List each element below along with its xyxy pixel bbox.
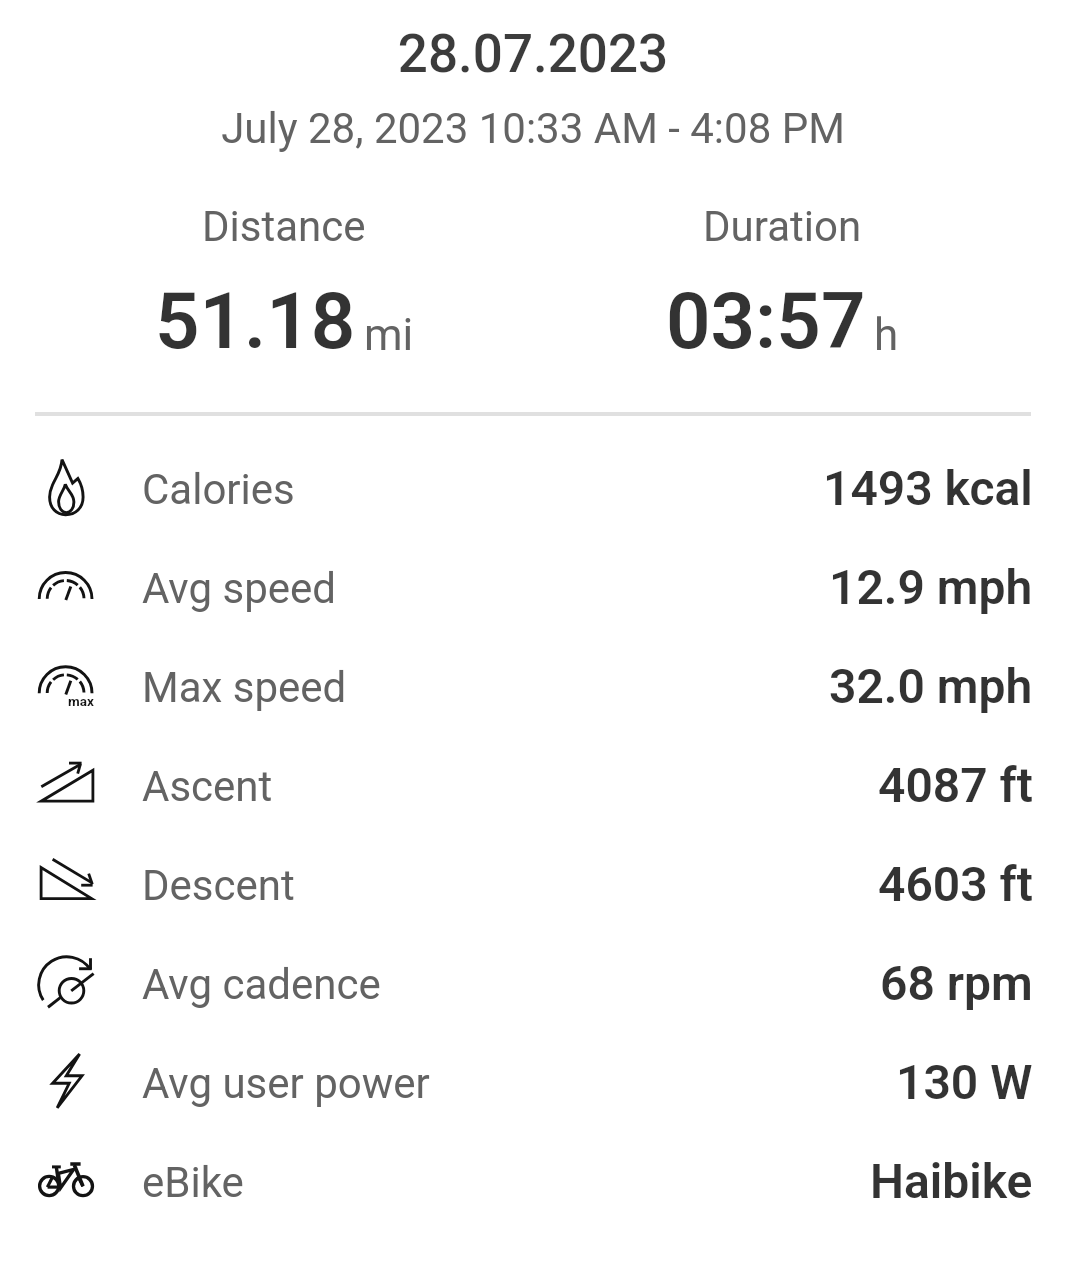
button[interactable]: Maximum speed [0, 636, 1073, 735]
staticText: mi [364, 309, 414, 361]
button[interactable]: Calories [0, 438, 1073, 537]
staticText: Avg user power [142, 1059, 430, 1108]
staticText: h [874, 309, 899, 361]
staticText: Calories [142, 465, 295, 514]
other: Average cadence [36, 952, 96, 1012]
staticText: Duration [703, 202, 862, 251]
staticText: Avg cadence [142, 960, 381, 1009]
button[interactable]: Average cadence [0, 933, 1073, 1032]
other: Ascent [36, 754, 96, 814]
staticText: Avg speed [142, 564, 336, 613]
staticText: Distance [202, 202, 366, 251]
staticText: eBike [142, 1158, 244, 1207]
other: Maximum speed [36, 658, 96, 718]
button[interactable]: Descent [0, 834, 1073, 933]
staticText: Ascent [142, 762, 273, 811]
staticText: Max speed [142, 663, 347, 712]
button[interactable]: Average speed [0, 537, 1073, 636]
other: Calories [36, 458, 96, 518]
button[interactable]: Ascent [0, 735, 1073, 834]
staticText: 1493 kcal [823, 460, 1033, 516]
staticText: 4087 ft [878, 757, 1033, 813]
other: eBike [36, 1149, 96, 1209]
staticText: 28.07.2023 [35, 23, 1031, 85]
staticText: 130 W [896, 1054, 1033, 1110]
button[interactable]: Average user power [0, 1032, 1073, 1131]
staticText: 12.9 mph [829, 559, 1033, 615]
other: Average user power [36, 1051, 96, 1111]
staticText: 51.18 [155, 276, 356, 367]
staticText: Descent [142, 861, 295, 910]
button[interactable]: eBike [0, 1131, 1073, 1230]
staticText: max [68, 693, 94, 709]
staticText: Haibike [870, 1153, 1033, 1209]
staticText: 03:57 [666, 276, 866, 367]
other: Descent [36, 855, 96, 915]
staticText: 32.0 mph [829, 658, 1033, 714]
staticText: 68 rpm [880, 955, 1033, 1011]
staticText: July 28, 2023 10:33 AM - 4:08 PM [35, 104, 1031, 153]
other: Average speed [36, 561, 96, 621]
staticText: 4603 ft [878, 856, 1033, 912]
